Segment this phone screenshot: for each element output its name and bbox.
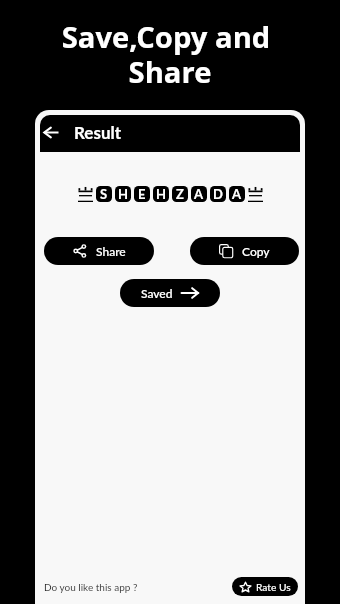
- staticText: Share: [96, 244, 126, 258]
- staticText: A: [232, 186, 242, 202]
- button[interactable]: Back: [40, 120, 62, 144]
- staticText: Save,Copy and: [0, 17, 336, 57]
- button[interactable]: Share: [44, 237, 154, 265]
- staticText: Saved: [141, 286, 173, 300]
- button[interactable]: Copy: [190, 237, 299, 265]
- staticText: Share: [0, 52, 340, 92]
- staticText: Z: [176, 186, 184, 202]
- staticText: Result: [74, 122, 122, 142]
- staticText: Rate Us: [256, 581, 291, 593]
- button[interactable]: Rate Us: [232, 577, 298, 596]
- staticText: D: [213, 186, 223, 202]
- staticText: Do you like this app ?: [44, 581, 138, 593]
- staticText: H: [156, 186, 167, 202]
- button[interactable]: Saved: [120, 279, 220, 307]
- staticText: Copy: [242, 244, 270, 258]
- staticText: E: [138, 186, 146, 202]
- staticText: H: [118, 186, 129, 202]
- staticText: S: [100, 186, 108, 202]
- staticText: A: [194, 186, 204, 202]
